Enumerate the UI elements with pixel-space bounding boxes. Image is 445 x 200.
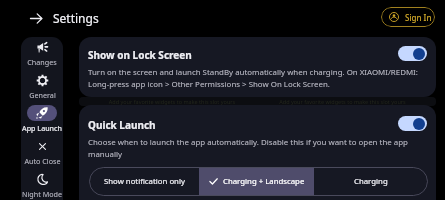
staticText: App Launch — [22, 123, 62, 133]
staticText: Quick Launch — [88, 118, 156, 132]
button[interactable]: Show on Lock Screen — [79, 37, 436, 97]
button[interactable]: Charging — [314, 167, 428, 196]
staticText: Turn on the screen and launch StandBy au… — [88, 67, 428, 90]
staticText: Auto Close — [24, 156, 61, 166]
button[interactable]: Changes — [21, 37, 63, 70]
button[interactable]: General — [21, 70, 63, 103]
button[interactable]: App Launch — [21, 103, 63, 136]
staticText: Add your favorite widgets to make this s… — [257, 98, 428, 105]
button[interactable]: Charging + Landscape — [199, 167, 314, 196]
button[interactable]: Toggle — [398, 46, 427, 61]
staticText: Sign In — [405, 12, 432, 23]
button[interactable]: Back — [24, 7, 48, 29]
staticText: Charging + Landscape — [223, 176, 305, 187]
staticText: Show on Lock Screen — [88, 48, 192, 62]
staticText: Add your favorite widgets to make this s… — [87, 98, 257, 105]
staticText: Changes — [27, 57, 57, 67]
staticText: Night Mode — [22, 189, 62, 199]
staticText: General — [29, 90, 56, 100]
button[interactable]: Sign In — [381, 7, 435, 27]
button[interactable]: Auto Close — [21, 136, 63, 169]
staticText: Choose when to launch the app automatica… — [88, 137, 428, 160]
staticText: Charging — [354, 176, 388, 187]
button[interactable]: Night Mode — [21, 169, 63, 200]
staticText: Show notification only — [104, 176, 185, 187]
button[interactable]: Toggle — [398, 116, 427, 131]
button[interactable]: Show notification only — [89, 167, 199, 196]
staticText: Settings — [53, 10, 99, 26]
